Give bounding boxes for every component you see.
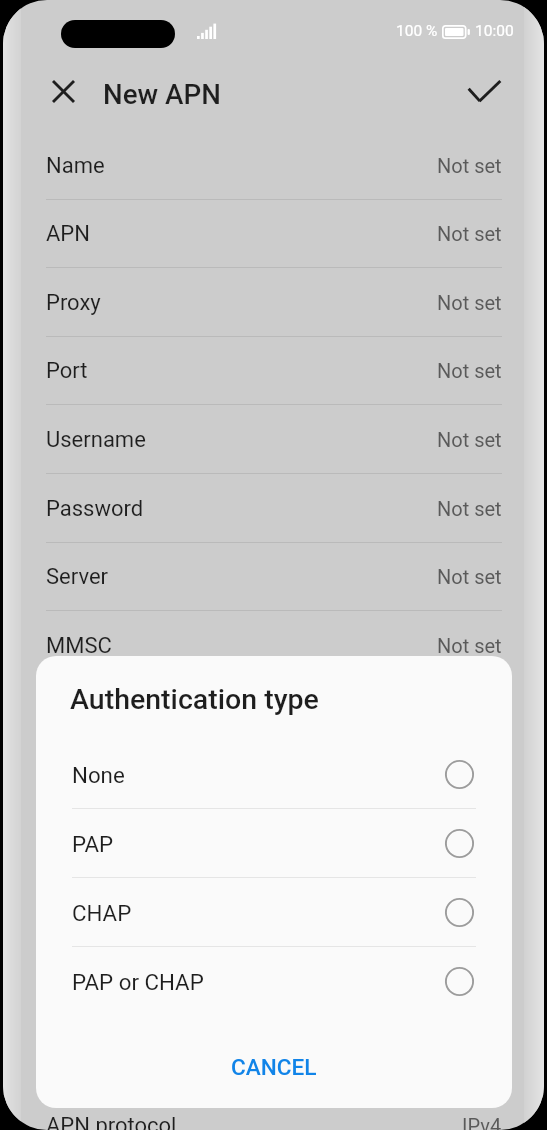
staticText: Not set [437, 634, 502, 657]
staticText: Proxy [46, 290, 101, 316]
button[interactable]: APN type [3, 1022, 544, 1091]
staticText: Password [46, 496, 144, 522]
button[interactable]: Password [3, 474, 544, 543]
staticText: Not set [437, 428, 502, 451]
button[interactable]: Username [3, 405, 544, 474]
staticText: PAP or CHAP [72, 969, 204, 995]
staticText: Not set [437, 291, 502, 314]
staticText: Not set [437, 497, 502, 520]
button[interactable]: Name [3, 131, 544, 200]
button[interactable]: Server [3, 542, 544, 611]
staticText: None [72, 762, 125, 788]
staticText: MNC [46, 907, 96, 933]
button[interactable]: PAP [36, 809, 512, 878]
button[interactable]: PAP or CHAP [36, 947, 512, 1016]
button[interactable]: None [36, 740, 512, 809]
staticText: 10:00 [475, 22, 514, 40]
staticText: Not set [437, 359, 502, 382]
button[interactable]: MCC [3, 817, 544, 886]
staticText: Not set [437, 154, 502, 177]
staticText: MMS port [46, 770, 144, 796]
staticText: CHAP [72, 900, 132, 926]
staticText: Username [46, 427, 146, 453]
staticText: CANCEL [231, 1054, 317, 1080]
staticText: APN [46, 221, 90, 247]
button[interactable]: APN protocol [3, 1091, 544, 1130]
staticText: Authentication type [70, 683, 319, 716]
button[interactable]: Proxy [3, 268, 544, 337]
staticText: APN protocol [46, 1113, 177, 1130]
staticText: 234 [468, 840, 502, 863]
button[interactable]: Port [3, 336, 544, 405]
staticText: Not set [437, 565, 502, 588]
button[interactable]: MMS port [3, 748, 544, 817]
staticText: MMSC [46, 633, 112, 659]
staticText: Server [46, 564, 109, 590]
staticText: New APN [103, 78, 221, 110]
button[interactable]: APN [3, 199, 544, 268]
staticText: PAP [72, 831, 114, 857]
button[interactable]: MMS proxy [3, 679, 544, 748]
button[interactable]: Authentication type [3, 954, 544, 1023]
staticText: IPv4 [462, 1114, 502, 1130]
staticText: MCC [46, 839, 94, 865]
staticText: Authentication type [46, 976, 236, 1002]
staticText: 100 % [396, 22, 438, 40]
staticText: Not set [437, 977, 502, 1000]
button[interactable]: Save [460, 67, 508, 115]
staticText: Port [46, 358, 88, 384]
staticText: Not set [437, 771, 502, 794]
button[interactable]: Close [39, 67, 87, 115]
staticText: Not set [437, 222, 502, 245]
button[interactable]: MMSC [3, 611, 544, 680]
staticText: MMS proxy [46, 701, 157, 727]
staticText: Name [46, 153, 105, 179]
button[interactable]: CANCEL [203, 1044, 345, 1090]
button[interactable]: CHAP [36, 878, 512, 947]
button[interactable]: MNC [3, 885, 544, 954]
